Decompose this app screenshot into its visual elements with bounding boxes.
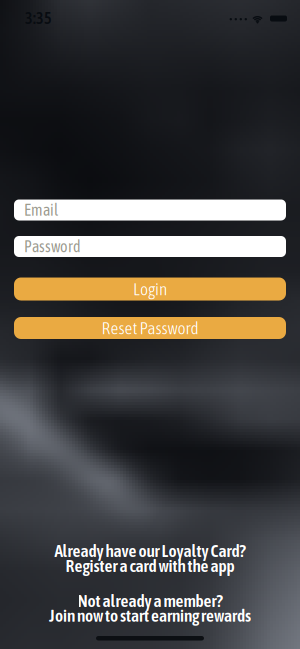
button[interactable]: Login — [14, 277, 286, 300]
textField[interactable]: Email — [24, 201, 286, 219]
staticText: Email — [24, 201, 58, 219]
button[interactable]: Already have our Loyalty Card? — [54, 543, 245, 573]
staticText: Already have our Loyalty Card? — [54, 543, 245, 558]
staticText: Login — [133, 279, 167, 299]
textField[interactable]: Password — [24, 237, 286, 256]
button[interactable]: Not already a member? — [49, 593, 251, 623]
staticText: 3:35 — [25, 9, 52, 27]
staticText: Reset Password — [101, 318, 198, 338]
staticText: Register a card with the app — [65, 558, 234, 573]
button[interactable]: Reset Password — [14, 317, 286, 339]
staticText: Password — [24, 237, 81, 256]
staticText: Join now to start earning rewards — [49, 608, 251, 623]
staticText: Not already a member? — [77, 593, 222, 608]
